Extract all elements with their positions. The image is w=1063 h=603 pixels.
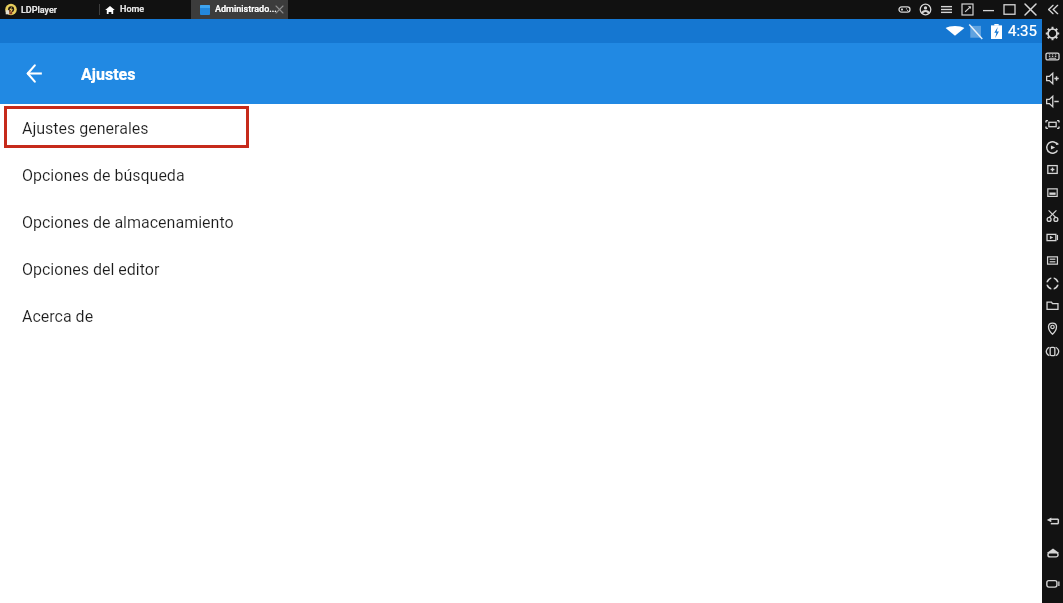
staticText: Opciones del editor [22,260,160,279]
button[interactable]: Transfer [1042,249,1063,271]
button[interactable]: Close tab [274,4,285,15]
button[interactable]: Location [1042,317,1063,339]
button[interactable]: Settings [1042,22,1063,44]
button[interactable]: Menu [936,0,957,19]
button[interactable]: Tilt [1042,340,1063,362]
button[interactable]: Collapse sidebar [1041,0,1063,19]
button[interactable]: Close [1020,0,1041,19]
button[interactable]: Opciones del editor [0,245,1042,292]
button[interactable]: Volume down [1042,90,1063,112]
button[interactable]: Volume up [1042,67,1063,89]
button[interactable]: Home [1042,537,1063,568]
button[interactable]: Back [1042,506,1063,537]
button[interactable]: Shake [1042,272,1063,294]
button[interactable]: LDPlayer [2,0,62,19]
button[interactable]: Opciones de búsqueda [0,151,1042,198]
staticText: Opciones de almacenamiento [22,213,234,232]
staticText: Ajustes [81,65,136,84]
staticText: 4:35 [1008,22,1037,40]
button[interactable]: Gamepad [894,0,915,19]
button[interactable]: Install APK [1042,181,1063,203]
button[interactable]: Ajustes generales [0,104,1042,151]
button[interactable]: Record [1042,226,1063,248]
button[interactable]: Home [103,0,153,19]
staticText: Opciones de búsqueda [22,166,185,185]
button[interactable]: Administrado... [191,0,288,19]
button[interactable]: Resize [957,0,978,19]
button[interactable]: Acerca de [0,292,1042,339]
button[interactable]: Recents [1042,568,1063,599]
staticText: Home [120,4,145,15]
button[interactable]: Screenshot [1042,158,1063,180]
button[interactable]: Back [16,55,52,91]
staticText: LDPlayer [21,5,57,16]
button[interactable]: Cut [1042,204,1063,226]
button[interactable]: Account [915,0,936,19]
staticText: Administrado... [215,4,277,15]
staticText: Ajustes generales [22,119,149,138]
button[interactable]: Fullscreen [1042,113,1063,135]
button[interactable]: Keyboard [1042,45,1063,67]
button[interactable]: Rotate [1042,136,1063,158]
button[interactable]: Files [1042,294,1063,316]
button[interactable]: Maximize [999,0,1020,19]
staticText: Acerca de [22,307,94,326]
button[interactable]: Opciones de almacenamiento [0,198,1042,245]
button[interactable]: Minimize [978,0,999,19]
